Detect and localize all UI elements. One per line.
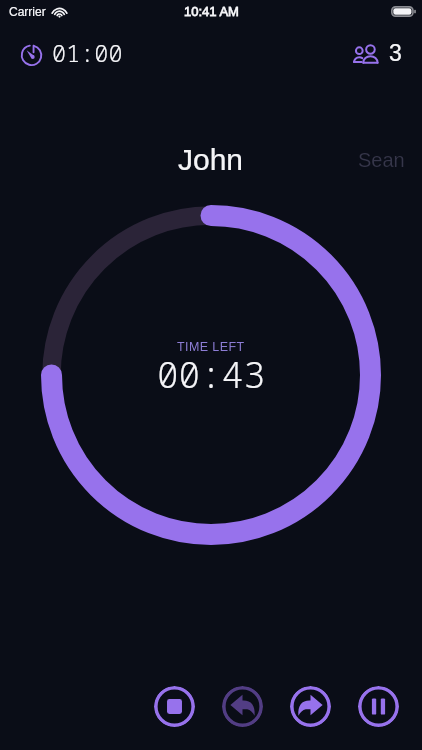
staticText: 10:41 AM — [184, 4, 239, 19]
staticText: 00:43 — [157, 350, 266, 399]
button[interactable]: 3 — [344, 34, 422, 72]
staticText: 3 — [389, 40, 402, 66]
button[interactable]: Pause — [358, 686, 399, 727]
staticText: Sean — [358, 149, 405, 171]
staticText: TIME LEFT — [177, 340, 245, 354]
staticText: 01:00 — [52, 37, 123, 69]
button[interactable]: Undo — [222, 686, 263, 727]
button[interactable]: Stop — [154, 686, 195, 727]
staticText: Carrier — [9, 5, 46, 18]
button[interactable]: Redo — [290, 686, 331, 727]
button[interactable]: 01:00 — [0, 31, 131, 75]
staticText: John — [178, 143, 244, 177]
